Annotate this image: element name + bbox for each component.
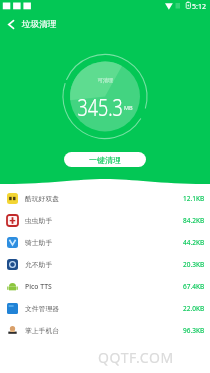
staticText: QQTF.COM <box>98 348 174 367</box>
staticText: 一键清理 <box>89 155 121 165</box>
button[interactable]: 一键清理 <box>64 152 146 167</box>
staticText: 允不助手 <box>25 260 53 269</box>
staticText: MB <box>124 104 133 111</box>
staticText: 垃圾清理 <box>22 19 57 30</box>
button[interactable]: 允不助手 <box>0 253 210 275</box>
staticText: 骑士助手 <box>25 238 53 247</box>
staticText: 345.3 <box>77 91 123 122</box>
staticText: 虫虫助手 <box>25 216 53 225</box>
staticText: Pico TTS <box>25 282 52 291</box>
staticText: 12.1KB <box>183 194 205 203</box>
staticText: 掌上手机台 <box>25 326 59 335</box>
staticText: 84.2KB <box>183 216 205 225</box>
button[interactable]: 虫虫助手 <box>0 209 210 231</box>
staticText: 可清理 <box>98 77 113 83</box>
staticText: 44.2KB <box>183 238 205 247</box>
staticText: 文件管理器 <box>25 304 59 313</box>
staticText: 67.4KB <box>183 282 205 291</box>
button[interactable]: 酷玩好双盘 <box>0 187 210 209</box>
staticText: 20.3KB <box>183 260 205 269</box>
button[interactable]: 掌上手机台 <box>0 319 210 341</box>
staticText: 5:12 <box>192 2 206 12</box>
button[interactable]: 骑士助手 <box>0 231 210 253</box>
button[interactable]: 文件管理器 <box>0 297 210 319</box>
staticText: 96.3KB <box>183 326 205 335</box>
staticText: 酷玩好双盘 <box>25 194 59 203</box>
button[interactable]: Back <box>0 17 22 31</box>
staticText: 22.0KB <box>183 304 205 313</box>
button[interactable]: Pico TTS <box>0 275 210 297</box>
